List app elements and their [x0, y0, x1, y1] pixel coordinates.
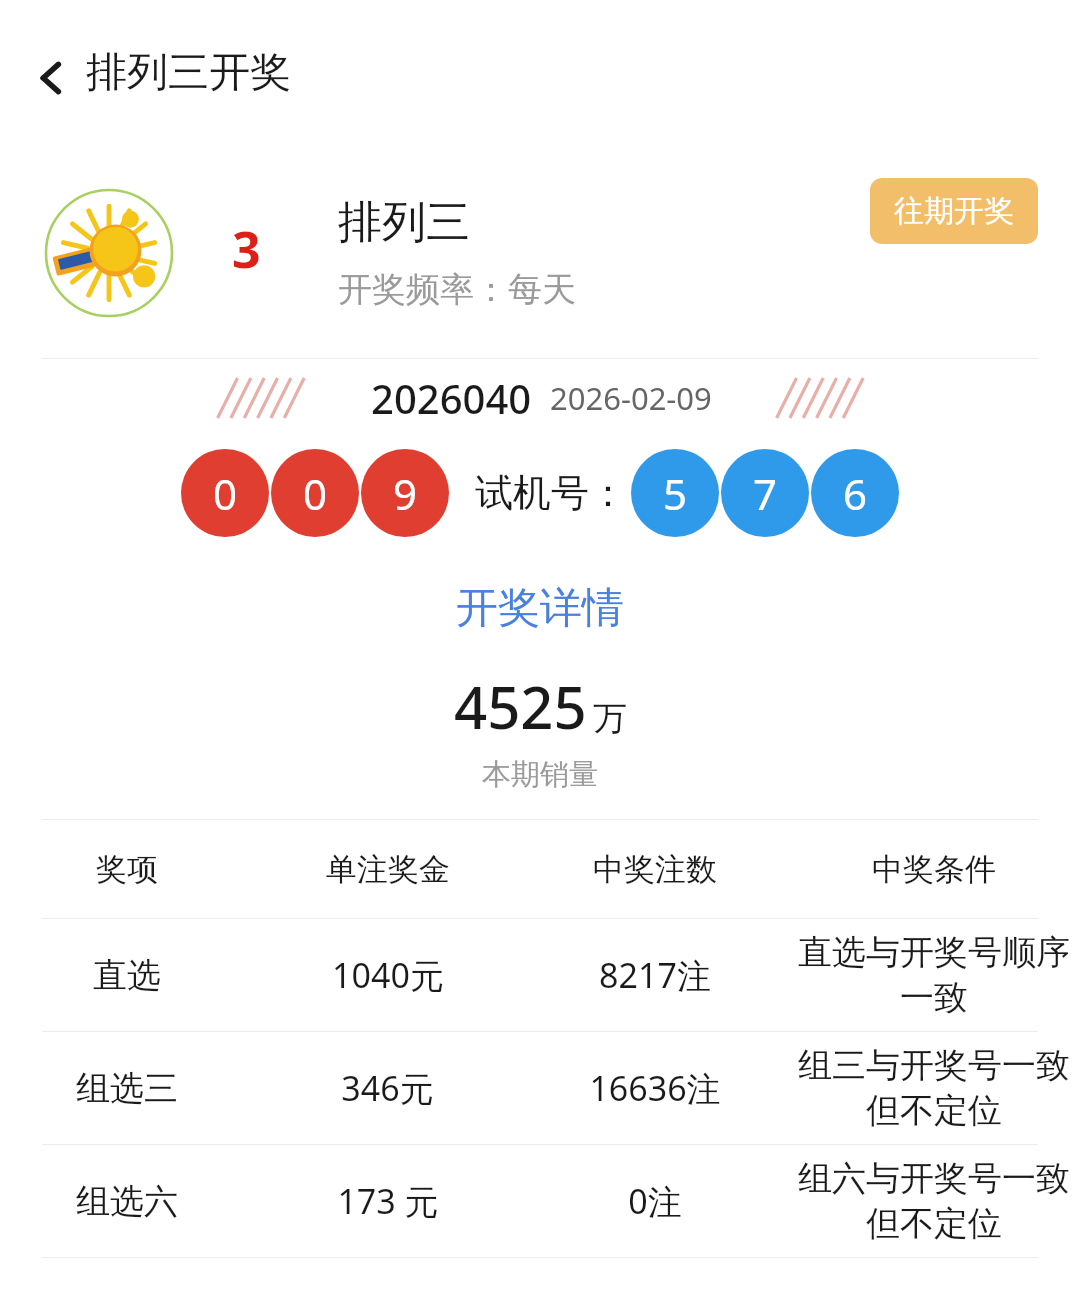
staticText: 0	[303, 465, 328, 522]
staticText: 排列三开奖	[86, 47, 291, 99]
staticText: 直选	[93, 954, 161, 997]
staticText: 排列三	[338, 195, 470, 250]
staticText: 万	[593, 697, 627, 740]
staticText: 8217注	[599, 952, 711, 998]
staticText: 0注	[628, 1178, 682, 1224]
button[interactable]: Back	[18, 44, 86, 112]
staticText: 直选与开奖号顺序一致	[796, 931, 1072, 1019]
staticText: 346元	[341, 1065, 434, 1111]
staticText: 173 元	[337, 1178, 439, 1224]
staticText: 3	[232, 215, 261, 283]
button[interactable]: 往期开奖	[870, 178, 1038, 244]
staticText: 5	[663, 465, 688, 522]
staticText: 本期销量	[482, 756, 598, 793]
staticText: 往期开奖	[894, 192, 1014, 230]
button[interactable]: 组选三	[0, 1032, 1080, 1144]
staticText: 0	[213, 465, 238, 522]
staticText: 中奖条件	[872, 850, 996, 889]
staticText: 16636注	[589, 1065, 721, 1111]
staticText: 7	[753, 465, 778, 522]
staticText: 4525	[454, 667, 587, 746]
staticText: 1040元	[332, 952, 444, 998]
staticText: 2026-02-09	[550, 377, 712, 419]
staticText: 开奖频率：每天	[338, 268, 576, 311]
staticText: 6	[843, 465, 868, 522]
staticText: 单注奖金	[326, 850, 450, 889]
staticText: 组三与开奖号一致但不定位	[796, 1044, 1072, 1132]
staticText: 试机号：	[475, 469, 627, 517]
button[interactable]: 开奖详情	[436, 572, 644, 645]
staticText: 奖项	[96, 850, 158, 889]
staticText: 组选三	[76, 1067, 178, 1110]
button[interactable]: 奖项	[0, 820, 1080, 918]
button[interactable]: 组选六	[0, 1145, 1080, 1257]
staticText: 9	[393, 465, 418, 522]
button[interactable]: 直选	[0, 919, 1080, 1031]
staticText: 中奖注数	[593, 850, 717, 889]
staticText: 2026040	[371, 371, 532, 425]
staticText: 开奖详情	[456, 582, 624, 635]
staticText: 组选六	[76, 1180, 178, 1223]
staticText: 组六与开奖号一致但不定位	[796, 1157, 1072, 1245]
